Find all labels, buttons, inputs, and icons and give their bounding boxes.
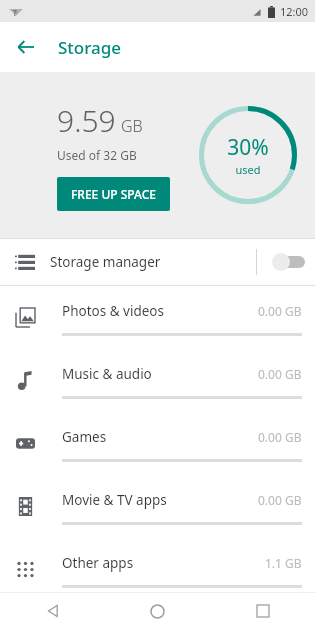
staticText: 0.00 GB <box>258 429 302 445</box>
staticText: 30% <box>227 133 269 162</box>
staticText: FREE UP SPACE <box>71 186 156 202</box>
staticText: 0.00 GB <box>258 303 302 319</box>
staticText: Storage <box>58 36 122 59</box>
staticText: 12:00 <box>280 4 309 19</box>
staticText: Other apps <box>62 554 265 572</box>
button[interactable]: Music & audio <box>0 349 315 412</box>
button[interactable]: Back <box>0 592 105 630</box>
button[interactable]: Storage manager <box>0 239 315 285</box>
staticText: used <box>235 162 261 177</box>
staticText: Games <box>62 428 258 446</box>
staticText: Photos & videos <box>62 302 258 320</box>
button[interactable]: Games <box>0 412 315 475</box>
button[interactable]: Movie & TV apps <box>0 475 315 538</box>
staticText: 1.1 GB <box>265 555 302 571</box>
button[interactable]: Storage manager toggle <box>257 239 315 285</box>
staticText: GB <box>121 115 143 137</box>
button[interactable]: Back <box>8 29 44 65</box>
staticText: 0.00 GB <box>258 366 302 382</box>
button[interactable]: FREE UP SPACE <box>57 177 170 211</box>
staticText: ? <box>13 7 17 18</box>
staticText: Used of 32 GB <box>57 147 137 163</box>
button[interactable]: Recent apps <box>210 592 315 630</box>
button[interactable]: Other apps <box>0 538 315 601</box>
staticText: Storage manager <box>50 253 256 271</box>
button[interactable]: Photos & videos <box>0 286 315 349</box>
button[interactable]: Home <box>105 592 210 630</box>
staticText: Movie & TV apps <box>62 491 258 509</box>
staticText: 9.59 <box>57 100 116 141</box>
staticText: 0.00 GB <box>258 492 302 508</box>
staticText: Music & audio <box>62 365 258 383</box>
